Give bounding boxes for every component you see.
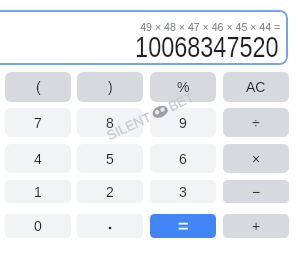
staticText: 0 [34,218,42,234]
button[interactable]: 7 [5,108,71,137]
staticText: 1 [34,184,42,200]
button[interactable]: 1 [5,180,71,203]
staticText: AC [246,79,266,95]
staticText: 8 [106,115,114,131]
button[interactable]: 5 [77,144,143,173]
button[interactable]: AC [223,72,289,102]
button[interactable]: ) [77,72,143,102]
button[interactable]: 4 [5,144,71,173]
button[interactable]: 6 [150,144,216,173]
staticText: 10068347520 [135,30,279,63]
button[interactable]: + [223,214,289,238]
staticText: ( [36,79,41,95]
staticText: 49 × 48 × 47 × 46 × 45 × 44 = [140,21,281,34]
staticText: 6 [179,151,187,167]
staticText: ÷ [252,115,260,131]
button[interactable] [77,214,143,238]
staticText: 4 [34,151,42,167]
staticText: 7 [34,115,42,131]
staticText: ) [108,79,113,95]
staticText: 9 [179,115,187,131]
staticText: BET [166,89,197,114]
button[interactable]: 0 [5,214,71,238]
button[interactable]: 9 [150,108,216,137]
staticText: × [252,151,261,167]
staticText: − [252,184,261,200]
button[interactable]: ÷ [223,108,289,137]
button[interactable]: % [150,72,216,102]
staticText: % [177,79,190,95]
button[interactable]: = [150,214,216,238]
button[interactable]: ( [5,72,71,102]
button[interactable]: 8 [77,108,143,137]
staticText: 2 [106,184,114,200]
staticText: SILENT [104,109,154,143]
button[interactable]: 3 [150,180,216,203]
button[interactable]: 2 [77,180,143,203]
staticText: 5 [106,151,114,167]
staticText: + [252,218,261,234]
button[interactable]: − [223,180,289,203]
button[interactable]: × [223,144,289,173]
staticText: 3 [179,184,187,200]
staticText: = [178,216,189,236]
